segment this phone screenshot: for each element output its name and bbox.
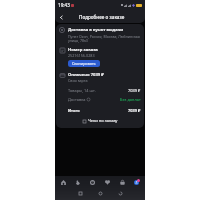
staticText: 25216156-0283 bbox=[68, 53, 95, 58]
button[interactable]: Cart bbox=[116, 176, 129, 189]
staticText: Без доплат bbox=[120, 97, 141, 102]
button[interactable]: Доставка в пункт выдачи bbox=[59, 27, 141, 43]
button[interactable]: Home bbox=[57, 176, 70, 189]
button[interactable]: Recents bbox=[77, 190, 83, 196]
staticText: 7039 ₽ bbox=[128, 108, 141, 113]
button[interactable]: Home bbox=[97, 190, 103, 196]
button[interactable]: Profile bbox=[130, 176, 143, 189]
button[interactable]: Скопировать bbox=[68, 60, 100, 67]
staticText: Номер заказа bbox=[68, 47, 98, 53]
staticText: Оплачено 7039 ₽ bbox=[68, 72, 104, 78]
staticText: Своя карта bbox=[68, 78, 88, 83]
button[interactable]: Чеки по заказу bbox=[59, 118, 141, 124]
staticText: 7039 ₽ bbox=[128, 88, 141, 93]
staticText: Пункт Ozon, Россия, Москва, Люблинская у… bbox=[68, 34, 141, 43]
staticText: 19:43 bbox=[58, 2, 70, 8]
staticText: Чеки по заказу bbox=[88, 118, 118, 124]
staticText: Товары, 14 шт. bbox=[68, 88, 96, 93]
staticText: Итого bbox=[68, 108, 80, 113]
staticText: Подробнее о заказе bbox=[79, 14, 125, 20]
button[interactable]: Back bbox=[55, 11, 67, 23]
staticText: Доставка в пункт выдачи bbox=[68, 27, 124, 33]
button[interactable]: Favorites bbox=[101, 176, 114, 189]
button[interactable]: Catalog bbox=[71, 176, 84, 189]
button[interactable]: Back bbox=[117, 190, 123, 196]
button[interactable]: Orders bbox=[86, 176, 99, 189]
staticText: Скопировать bbox=[72, 61, 96, 66]
staticText: Доставка bbox=[68, 97, 86, 102]
